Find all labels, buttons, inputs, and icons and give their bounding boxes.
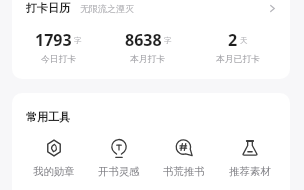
staticText: 常用工具 xyxy=(26,110,70,124)
button[interactable]: 我的勋章 xyxy=(21,140,86,178)
staticText: 本月已打卡 xyxy=(216,54,260,65)
button[interactable]: 书荒推书 xyxy=(151,140,217,178)
staticText: 1793 xyxy=(35,29,72,51)
staticText: 书荒推书 xyxy=(163,165,205,178)
staticText: 本月打卡 xyxy=(130,54,166,65)
staticText: 我的勋章 xyxy=(33,165,75,178)
staticText: 今日打卡 xyxy=(41,54,77,65)
staticText: 8638 xyxy=(125,29,162,51)
other: 书荒推书 xyxy=(176,140,192,156)
other: 更多 xyxy=(268,4,277,13)
button[interactable]: 开书灵感 xyxy=(86,140,151,178)
staticText: 推荐素材 xyxy=(229,165,271,178)
staticText: 开书灵感 xyxy=(98,165,140,178)
button[interactable]: 推荐素材 xyxy=(217,140,283,178)
other: 开书灵感 xyxy=(111,140,127,156)
button[interactable]: 打卡日历 xyxy=(26,1,277,15)
staticText: 字 xyxy=(164,36,172,45)
staticText: 天 xyxy=(240,36,248,45)
staticText: 打卡日历 xyxy=(26,1,70,15)
staticText: 无限流之湮灭 xyxy=(80,3,134,14)
other: 我的勋章 xyxy=(46,140,62,156)
other: 推荐素材 xyxy=(242,140,258,156)
staticText: 字 xyxy=(74,36,82,45)
staticText: 2 xyxy=(228,29,238,51)
